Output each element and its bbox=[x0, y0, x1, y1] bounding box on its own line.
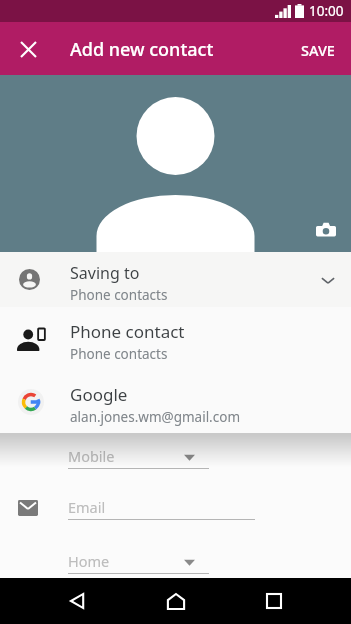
button[interactable]: SAVE bbox=[291, 30, 345, 68]
staticText: 10:00 bbox=[309, 2, 344, 20]
button[interactable]: Recents bbox=[252, 579, 296, 623]
staticText: Google bbox=[70, 383, 128, 406]
staticText: Mobile bbox=[68, 446, 115, 466]
button[interactable]: Google bbox=[0, 371, 351, 433]
button[interactable]: Change photo bbox=[310, 214, 342, 246]
staticText: Home bbox=[68, 551, 110, 571]
button[interactable]: Home bbox=[154, 579, 198, 623]
staticText: SAVE bbox=[301, 40, 335, 60]
button[interactable]: Saving to bbox=[0, 252, 351, 307]
button[interactable]: Phone contact bbox=[0, 307, 351, 371]
staticText: Email bbox=[68, 497, 106, 517]
staticText: Add new contact bbox=[70, 37, 214, 62]
button[interactable]: Back bbox=[55, 579, 99, 623]
staticText: Saving to bbox=[70, 262, 140, 284]
staticText: Phone contacts bbox=[70, 286, 168, 304]
staticText: Phone contact bbox=[70, 320, 185, 343]
staticText: Phone contacts bbox=[70, 345, 168, 363]
staticText: alan.jones.wm@gmail.com bbox=[70, 408, 241, 426]
button[interactable]: Close bbox=[10, 31, 46, 67]
